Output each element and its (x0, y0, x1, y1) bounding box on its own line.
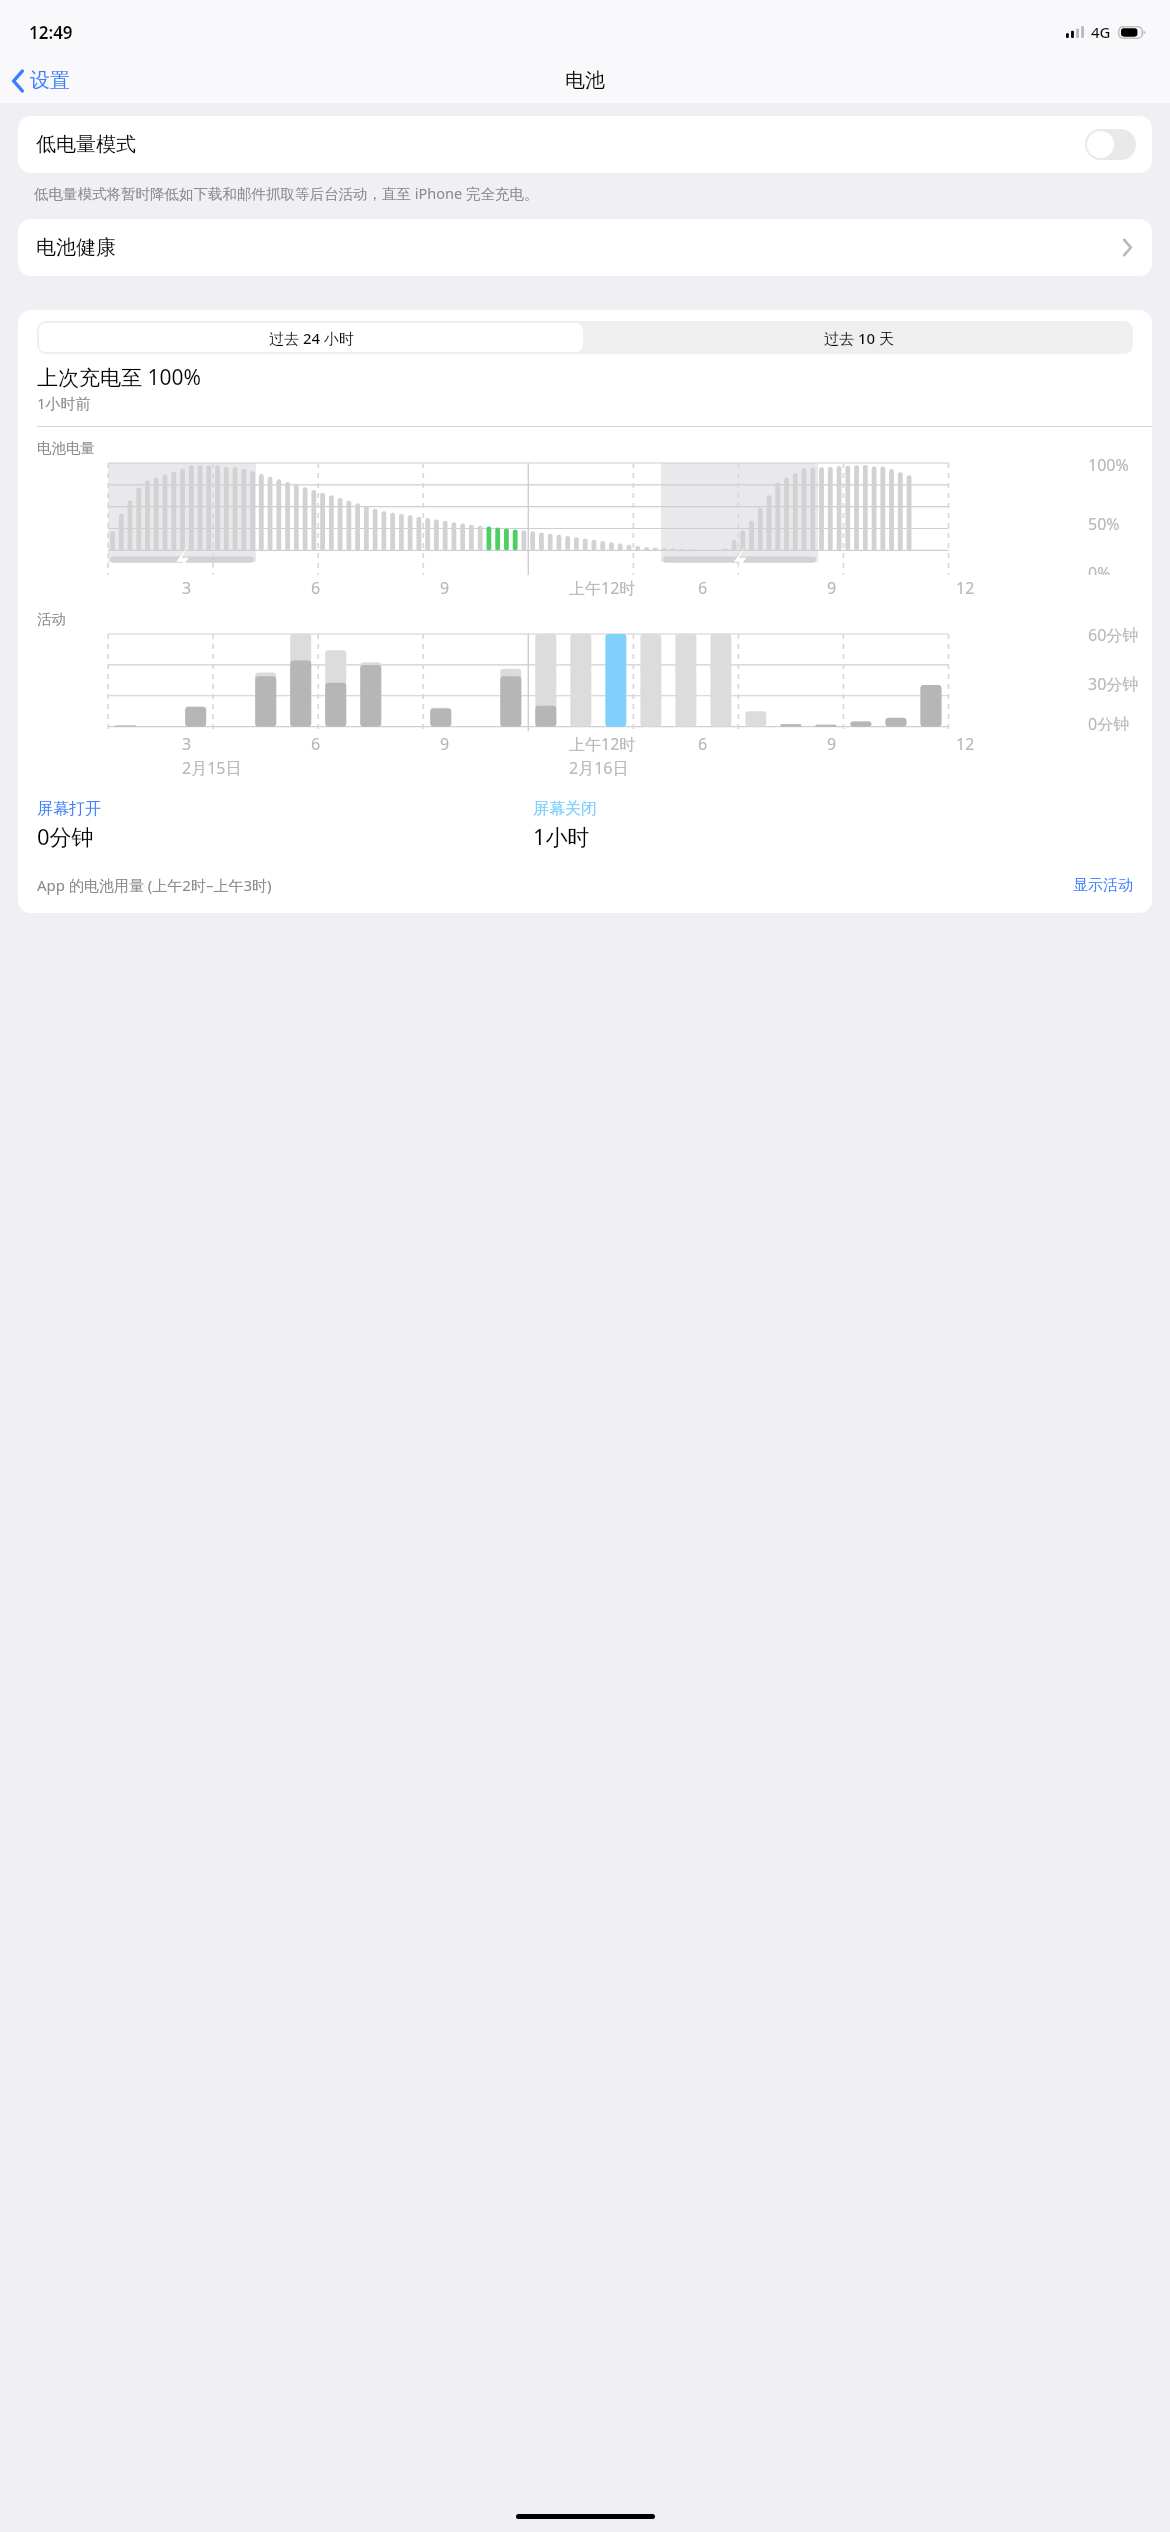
staticText: App 的电池用量 (上午2时–上午3时) (37, 875, 272, 895)
button[interactable]: 屏幕关闭 (533, 799, 597, 819)
staticText: 设置 (30, 68, 70, 93)
button[interactable]: 设置 (5, 63, 77, 98)
button[interactable]: 电池健康 (18, 219, 1152, 276)
staticText: 100% (1088, 454, 1129, 476)
staticText: 低电量模式将暂时降低如下载和邮件抓取等后台活动，直至 iPhone 完全充电。 (34, 183, 539, 203)
staticText: 0分钟 (1088, 713, 1130, 731)
staticText: 1小时 (533, 821, 590, 851)
button[interactable]: 屏幕打开 (37, 799, 101, 819)
button[interactable]: 过去 10 天 (585, 321, 1133, 354)
staticText: 1小时前 (37, 393, 91, 413)
staticText: 低电量模式 (36, 132, 136, 157)
staticText: 12 (956, 733, 975, 755)
staticText: 过去 24 小时 (269, 328, 354, 348)
staticText: 3 (182, 577, 192, 599)
staticText: 活动 (37, 610, 66, 628)
staticText: 3 (182, 733, 192, 755)
staticText: 6 (311, 577, 321, 599)
staticText: 电池 (565, 68, 605, 93)
staticText: 12 (956, 577, 975, 599)
staticText: 电池电量 (37, 439, 95, 457)
staticText: 电池健康 (36, 235, 116, 260)
staticText: 9 (827, 577, 837, 599)
staticText: 9 (827, 733, 837, 755)
button[interactable]: 低电量模式 (18, 116, 1152, 173)
staticText: 9 (440, 733, 450, 755)
staticText: 上午12时 (569, 733, 636, 755)
staticText: 0% (1088, 562, 1111, 575)
staticText: 6 (698, 733, 708, 755)
staticText: 60分钟 (1088, 624, 1139, 646)
button[interactable]: 显示活动 (1073, 876, 1133, 895)
staticText: 6 (311, 733, 321, 755)
staticText: 上次充电至 100% (37, 363, 201, 392)
staticText: 0分钟 (37, 821, 94, 851)
staticText: 30分钟 (1088, 673, 1139, 695)
button[interactable]: 低电量模式开关 (1085, 129, 1136, 160)
button[interactable]: 过去 24 小时 (39, 323, 583, 352)
staticText: 9 (440, 577, 450, 599)
staticText: 50% (1088, 513, 1120, 535)
staticText: 2月16日 (569, 757, 629, 779)
staticText: 12:49 (29, 21, 73, 44)
staticText: 2月15日 (182, 757, 242, 779)
staticText: 上午12时 (569, 577, 636, 599)
staticText: 过去 10 天 (824, 328, 894, 348)
staticText: 6 (698, 577, 708, 599)
staticText: 4G (1091, 22, 1111, 42)
